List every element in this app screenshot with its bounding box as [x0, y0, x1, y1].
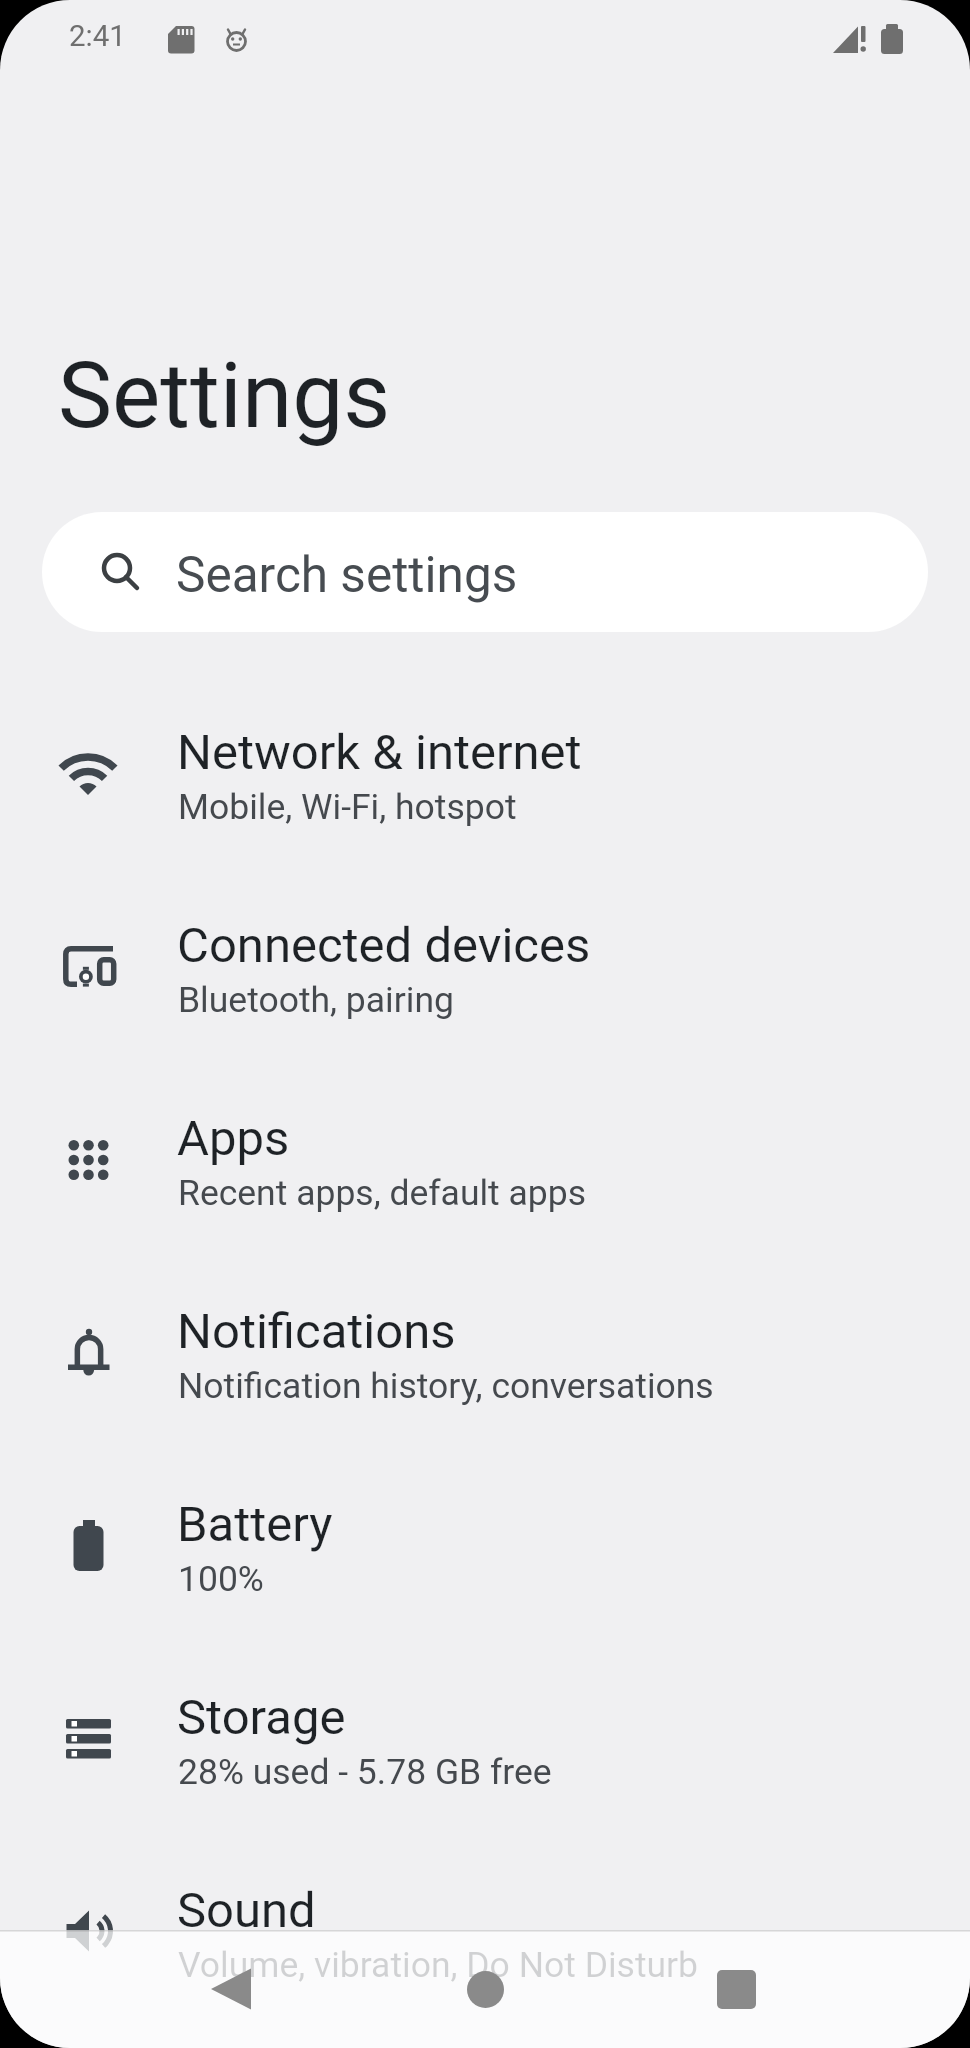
staticText: Sound [177, 1882, 316, 1939]
staticText: Settings [58, 343, 391, 450]
staticText: Mobile, Wi-Fi, hotspot [178, 786, 517, 828]
button[interactable]: Storage [0, 1645, 970, 1838]
button[interactable]: Sound [0, 1838, 970, 2031]
staticText: 100% [178, 1558, 264, 1600]
staticText: Apps [177, 1110, 290, 1167]
staticText: Storage [177, 1689, 346, 1746]
button[interactable]: Notifications [0, 1259, 970, 1452]
staticText: Battery [177, 1496, 333, 1553]
button[interactable]: Connected devices [0, 873, 970, 1066]
staticText: Notification history, conversations [178, 1365, 714, 1407]
button[interactable] [656, 1930, 816, 2048]
button[interactable]: Network & internet [0, 680, 970, 873]
button[interactable]: Battery [0, 1452, 970, 1645]
staticText: Network & internet [177, 724, 582, 781]
staticText: Search settings [176, 546, 518, 604]
staticText: 2:41 [69, 19, 126, 54]
staticText: Volume, vibration, Do Not Disturb [178, 1944, 699, 1986]
button[interactable]: Apps [0, 1066, 970, 1259]
button[interactable] [151, 1930, 311, 2048]
staticText: 28% used - 5.78 GB free [178, 1751, 552, 1793]
staticText: Notifications [177, 1303, 456, 1360]
staticText: Bluetooth, pairing [178, 979, 454, 1021]
staticText: Connected devices [177, 917, 591, 974]
button[interactable] [405, 1930, 565, 2048]
staticText: Recent apps, default apps [178, 1172, 587, 1214]
button[interactable]: Search settings [42, 512, 928, 632]
